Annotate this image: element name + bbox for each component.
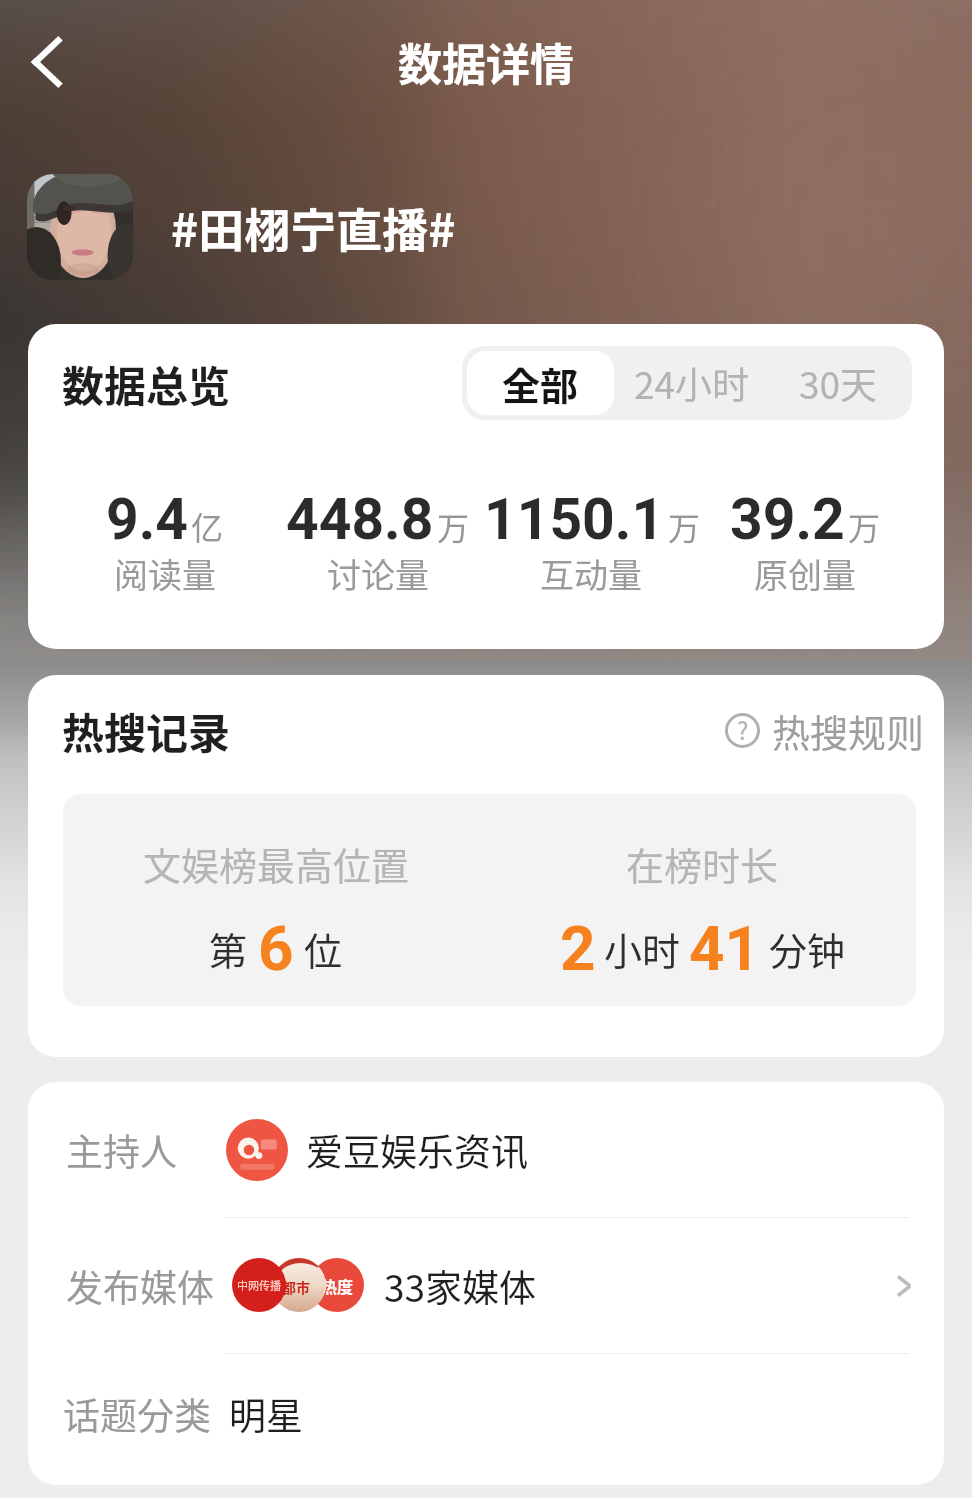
- button[interactable]: 30天: [765, 346, 912, 420]
- staticText: 讨论量: [327, 549, 429, 598]
- button[interactable]: 全部: [467, 351, 614, 415]
- staticText: 万: [437, 503, 470, 549]
- button[interactable]: 24小时: [619, 346, 765, 420]
- staticText: 41: [689, 912, 761, 985]
- staticText: 9.4: [106, 486, 188, 553]
- staticText: 在榜时长: [626, 836, 779, 891]
- staticText: 30天: [799, 356, 878, 410]
- staticText: #田栩宁直播#: [171, 194, 456, 261]
- staticText: 原创量: [754, 549, 856, 598]
- staticText: 24小时: [634, 356, 750, 410]
- button[interactable]: 主持人: [28, 1082, 944, 1217]
- button[interactable]: Back: [2, 19, 88, 105]
- staticText: 分钟: [769, 921, 846, 976]
- staticText: 万: [848, 503, 881, 549]
- staticText: 小时: [604, 921, 681, 976]
- staticText: 亿: [191, 503, 224, 549]
- staticText: 6: [258, 912, 294, 985]
- staticText: 1150.1: [484, 486, 665, 553]
- staticText: 阅读量: [114, 549, 216, 598]
- staticText: 都市: [282, 1277, 310, 1297]
- staticText: 话题分类: [63, 1387, 211, 1441]
- staticText: 33家媒体: [384, 1259, 537, 1313]
- staticText: 互动量: [540, 549, 642, 598]
- staticText: 万: [668, 503, 698, 549]
- staticText: 448.8: [286, 486, 434, 553]
- staticText: 热度: [321, 1274, 354, 1297]
- button[interactable]: ?: [725, 703, 925, 758]
- staticText: ?: [737, 712, 749, 747]
- staticText: 爱豆娱乐资讯: [306, 1123, 528, 1177]
- staticText: 位: [304, 921, 343, 976]
- button[interactable]: 话题分类: [28, 1354, 944, 1485]
- staticText: 热搜规则: [772, 703, 925, 758]
- staticText: 数据总览: [62, 353, 231, 414]
- staticText: 第: [209, 921, 248, 976]
- staticText: 2: [560, 912, 596, 985]
- staticText: 39.2: [730, 486, 845, 553]
- staticText: 全部: [502, 356, 579, 411]
- staticText: 明星: [229, 1387, 303, 1441]
- staticText: 发布媒体: [66, 1259, 214, 1313]
- staticText: 中网传播: [237, 1277, 281, 1293]
- button[interactable]: 发布媒体: [28, 1218, 944, 1353]
- staticText: 热搜记录: [62, 700, 231, 761]
- staticText: 文娱榜最高位置: [143, 836, 410, 891]
- staticText: 数据详情: [398, 30, 574, 94]
- staticText: 主持人: [66, 1123, 177, 1177]
